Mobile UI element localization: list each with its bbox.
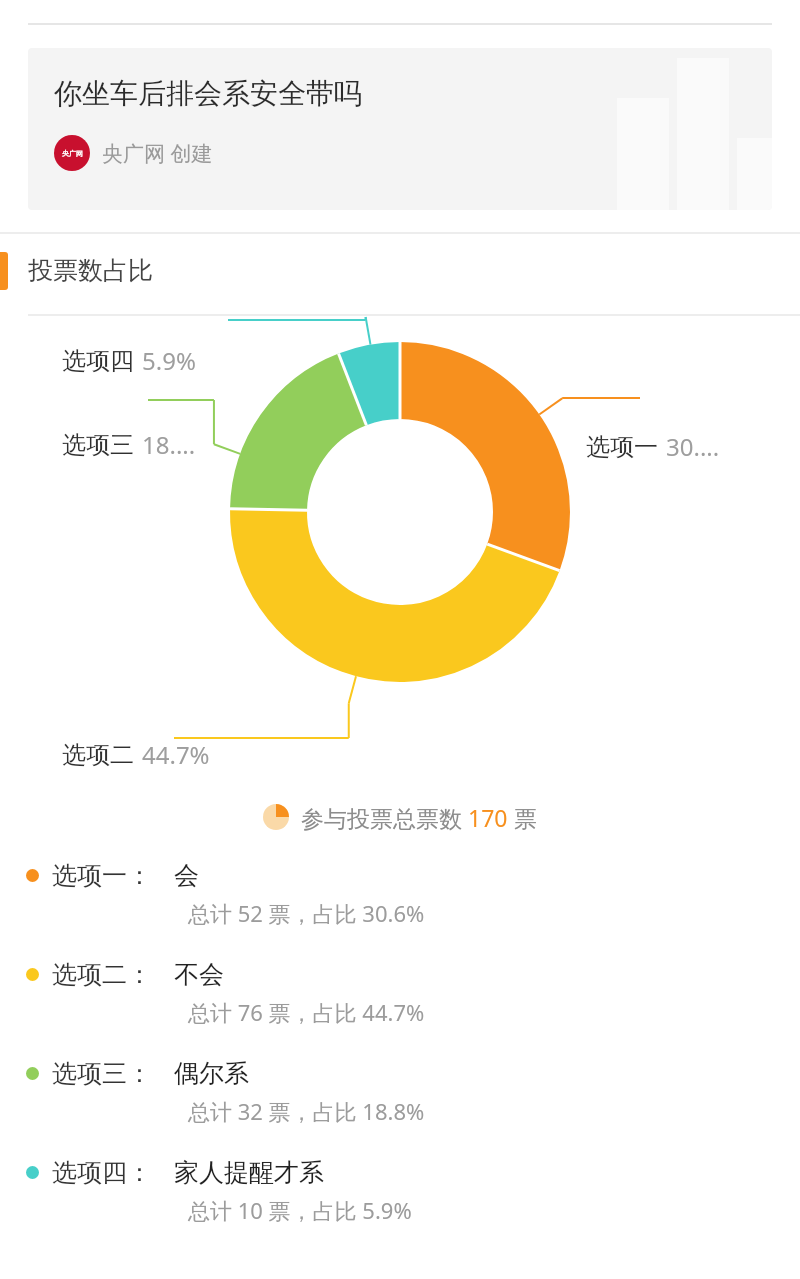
button[interactable]: 选项四： — [0, 1157, 800, 1256]
staticText: 选项一 — [586, 432, 658, 462]
staticText: 选项四 — [62, 346, 134, 376]
staticText: 选项三 — [62, 430, 134, 460]
staticText: 18.... — [142, 428, 196, 461]
button[interactable]: 选项三： — [0, 1058, 800, 1157]
staticText: 选项二 — [62, 740, 134, 770]
staticText: 总计 52 票，占比 30.6% — [188, 898, 425, 928]
staticText: 选项四： — [52, 1157, 152, 1188]
staticText: 总计 32 票，占比 18.8% — [188, 1096, 425, 1126]
button[interactable]: 投票统计图标 — [0, 788, 800, 846]
button[interactable]: 选项一： — [0, 860, 800, 959]
button[interactable]: 选项二： — [0, 959, 800, 1058]
staticText: 家人提醒才系 — [174, 1157, 324, 1188]
staticText: 总计 76 票，占比 44.7% — [188, 997, 425, 1027]
staticText: 不会 — [174, 959, 224, 990]
staticText: 参与投票总票数 — [301, 802, 468, 833]
button[interactable]: 你坐车后排会系安全带吗 — [28, 48, 772, 210]
staticText: 投票数占比 — [28, 255, 153, 286]
staticText: 44.7% — [142, 738, 210, 771]
other: 投票统计图标 — [263, 804, 289, 830]
staticText: 170 — [468, 802, 508, 833]
staticText: 5.9% — [142, 344, 196, 377]
staticText: 央广网 — [62, 149, 83, 158]
staticText: 票 — [508, 802, 537, 833]
staticText: 偶尔系 — [174, 1058, 249, 1089]
staticText: 总计 10 票，占比 5.9% — [188, 1195, 412, 1225]
staticText: 选项三： — [52, 1058, 152, 1089]
staticText: 央广网 创建 — [102, 139, 213, 168]
staticText: 你坐车后排会系安全带吗 — [54, 76, 362, 111]
staticText: 选项二： — [52, 959, 152, 990]
staticText: 选项一： — [52, 860, 152, 891]
staticText: 30.... — [666, 430, 720, 463]
staticText: 会 — [174, 860, 199, 891]
